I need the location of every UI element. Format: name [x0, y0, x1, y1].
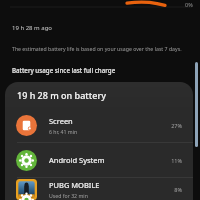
staticText: PUBG MOBILE: [49, 180, 100, 190]
staticText: 0%: [185, 1, 193, 8]
other: PUBG MOBILE: [16, 179, 37, 200]
staticText: The estimated battery life is based on y…: [12, 45, 182, 52]
staticText: 27%: [171, 122, 182, 129]
staticText: 19 h 28 m on battery: [17, 89, 106, 101]
other: Android System: [16, 150, 37, 171]
staticText: 6 hr, 41 min: [49, 128, 78, 135]
staticText: 8%: [174, 186, 182, 193]
other: Screen usage: [16, 115, 37, 136]
staticText: Used for 32 min: [49, 192, 88, 199]
staticText: Screen: [49, 116, 73, 126]
staticText: 19 h 28 m ago: [12, 24, 52, 32]
button[interactable]: Android System: [5, 143, 193, 177]
staticText: Android System: [49, 155, 105, 165]
button[interactable]: Screen usage: [5, 108, 193, 142]
staticText: Battery usage since last full charge: [12, 66, 116, 74]
staticText: 11%: [171, 157, 182, 164]
button[interactable]: 19 h 28 m on battery: [5, 82, 193, 108]
button[interactable]: PUBG MOBILE: [5, 178, 193, 200]
